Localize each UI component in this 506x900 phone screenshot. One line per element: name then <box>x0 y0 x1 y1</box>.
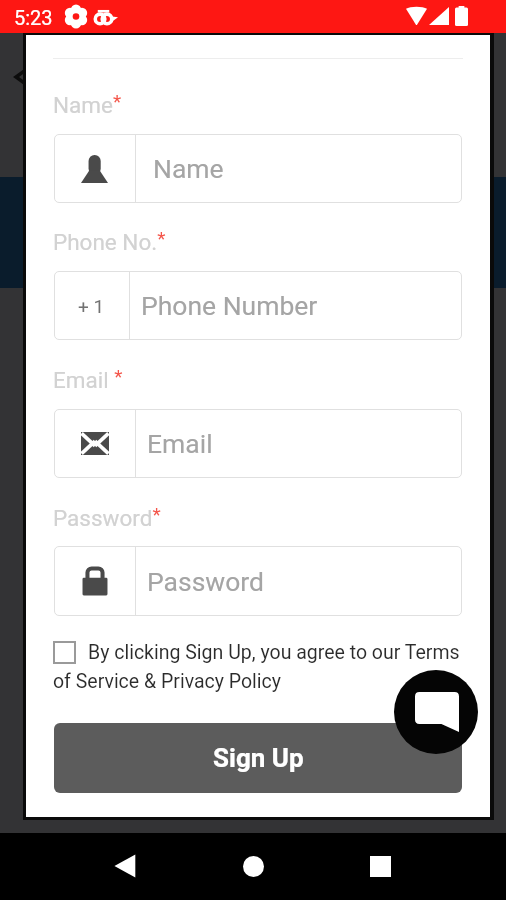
staticText: Name <box>153 153 224 184</box>
button[interactable]: Recents <box>356 842 404 890</box>
staticText: Phone Number <box>141 290 318 321</box>
staticText: Email * <box>53 365 123 394</box>
staticText: Name* <box>53 90 122 119</box>
button[interactable]: Chat <box>394 670 478 754</box>
staticText: Password <box>147 566 265 597</box>
button[interactable] <box>54 134 462 203</box>
button[interactable]: Home <box>229 842 277 890</box>
staticText: Sign Up <box>213 743 304 773</box>
staticText: 5:23 <box>14 6 53 29</box>
button[interactable]: + 1 <box>54 271 462 340</box>
button[interactable]: Sign Up <box>54 723 462 793</box>
staticText: + 1 <box>78 295 105 317</box>
staticText: Email <box>147 428 213 459</box>
staticText: Phone No.* <box>53 227 166 256</box>
button[interactable]: By clicking Sign Up, you agree to our Te… <box>53 641 465 699</box>
button[interactable]: Back <box>101 842 149 890</box>
button[interactable] <box>54 546 462 616</box>
button[interactable] <box>54 409 462 478</box>
staticText: Password* <box>53 503 161 532</box>
staticText: By clicking Sign Up, you agree to our Te… <box>53 641 465 693</box>
